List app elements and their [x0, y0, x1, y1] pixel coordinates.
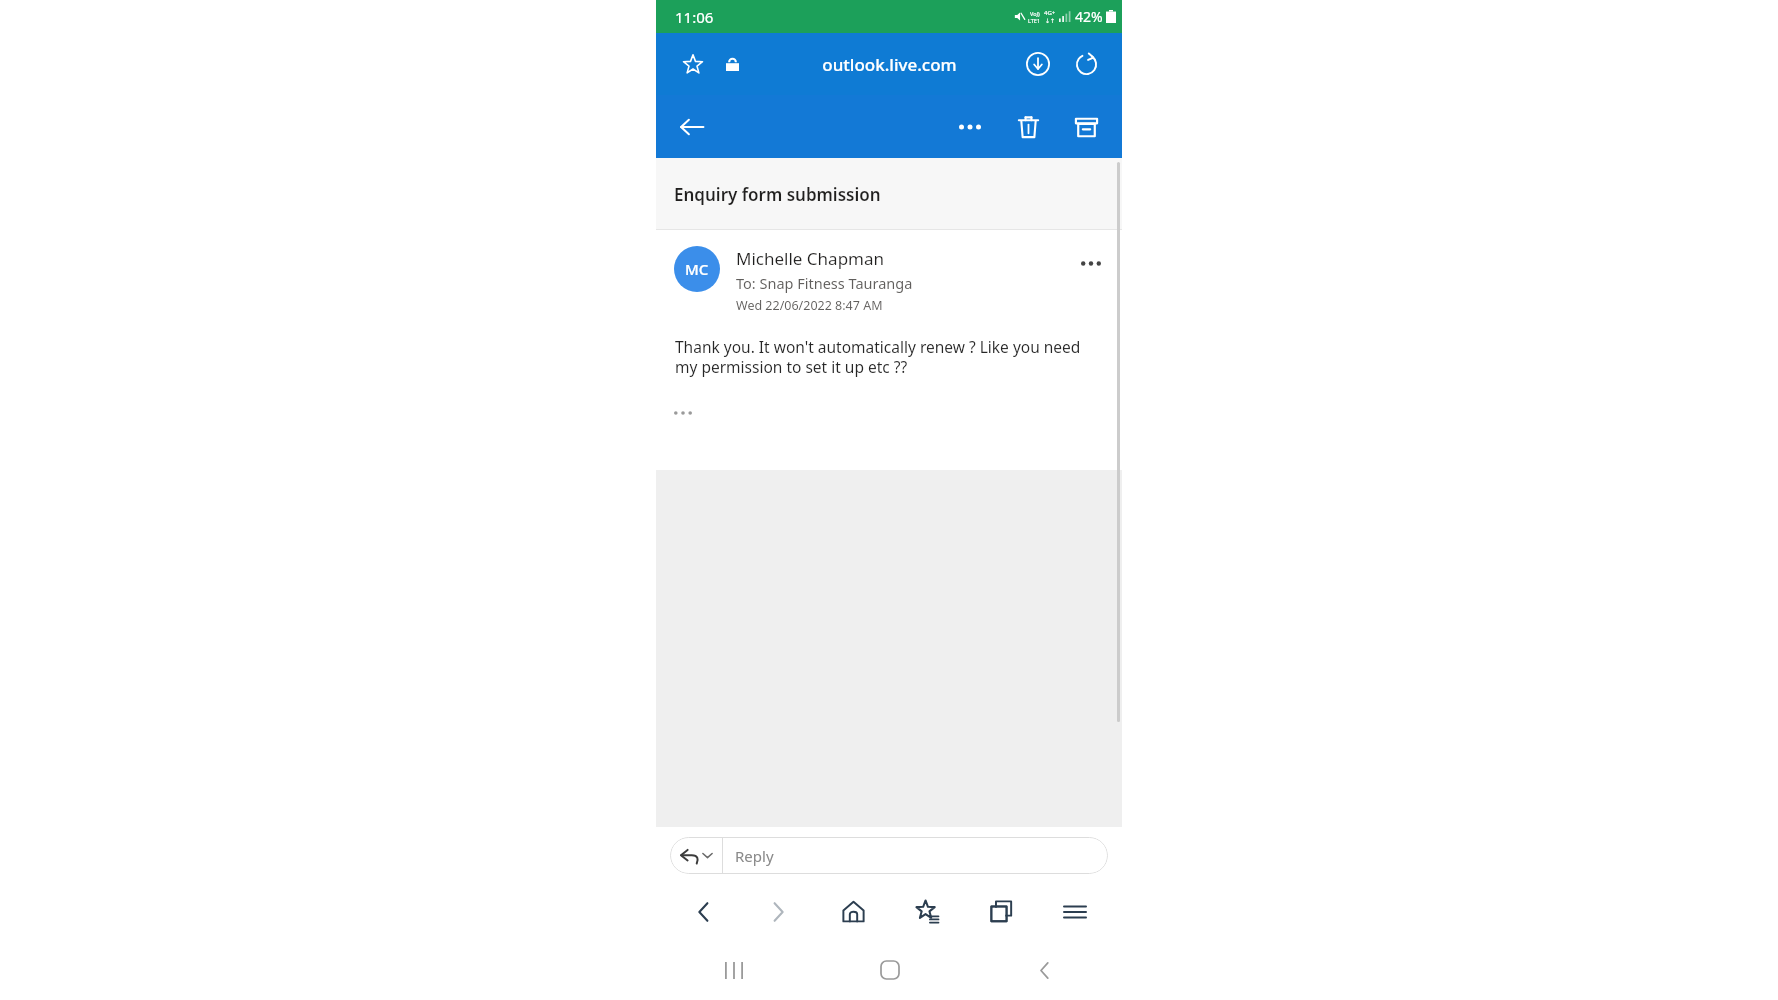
staticText: Reply: [735, 846, 774, 866]
staticText: Wed 22/06/2022 8:47 AM: [736, 297, 883, 314]
button[interactable]: Bookmark: [678, 49, 708, 79]
staticText: MC: [685, 259, 709, 279]
staticText: Michelle Chapman: [736, 247, 885, 270]
button[interactable]: Forward: [741, 883, 816, 940]
button[interactable]: More options: [950, 107, 990, 147]
staticText: Thank you. It won't automatically renew …: [675, 336, 1081, 378]
button[interactable]: Secure connection: [721, 53, 743, 75]
staticText: 42%: [1075, 7, 1103, 26]
button[interactable]: Show trimmed content: [674, 402, 708, 424]
button[interactable]: Message actions: [1074, 246, 1108, 280]
staticText: outlook.live.com: [822, 53, 957, 76]
button[interactable]: Refresh: [1070, 48, 1102, 80]
button[interactable]: Tabs: [964, 883, 1038, 940]
button[interactable]: Menu: [1038, 883, 1112, 940]
button[interactable]: Back: [666, 883, 741, 940]
staticText: ↓↑: [1045, 17, 1056, 24]
button[interactable]: Home: [816, 883, 890, 940]
button[interactable]: Recent apps: [656, 940, 812, 1000]
staticText: 4G+: [1044, 9, 1056, 17]
staticText: Enquiry form submission: [674, 183, 881, 206]
button[interactable]: Reply options: [680, 837, 713, 874]
staticText: LTE1: [1028, 17, 1041, 24]
button[interactable]: Archive: [1066, 107, 1106, 147]
button[interactable]: Downloads: [1022, 48, 1054, 80]
staticText: 11:06: [675, 7, 714, 27]
button[interactable]: Reply: [723, 837, 1108, 874]
staticText: VoJ): [1030, 10, 1040, 17]
button[interactable]: Delete: [1008, 107, 1048, 147]
button[interactable]: Back: [967, 940, 1122, 1000]
button[interactable]: Back: [670, 105, 714, 149]
button[interactable]: Bookmarks: [890, 883, 964, 940]
button[interactable]: MC: [674, 246, 1108, 314]
staticText: To: Snap Fitness Tauranga: [736, 273, 913, 293]
button[interactable]: Home: [812, 940, 967, 1000]
